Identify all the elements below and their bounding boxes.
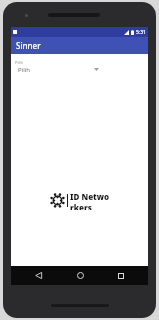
staticText: 5:31 [136, 29, 146, 36]
staticText: Sinner [16, 40, 41, 51]
button[interactable]: Home [66, 266, 94, 285]
staticText: Pilih [18, 66, 30, 74]
button[interactable]: Pilih [15, 57, 144, 77]
button[interactable]: Sinner [11, 37, 148, 54]
staticText: Pilih [15, 60, 23, 65]
staticText: ID Networkers [70, 191, 111, 210]
button[interactable]: Recent apps [107, 266, 135, 285]
button[interactable]: Back [24, 266, 52, 285]
